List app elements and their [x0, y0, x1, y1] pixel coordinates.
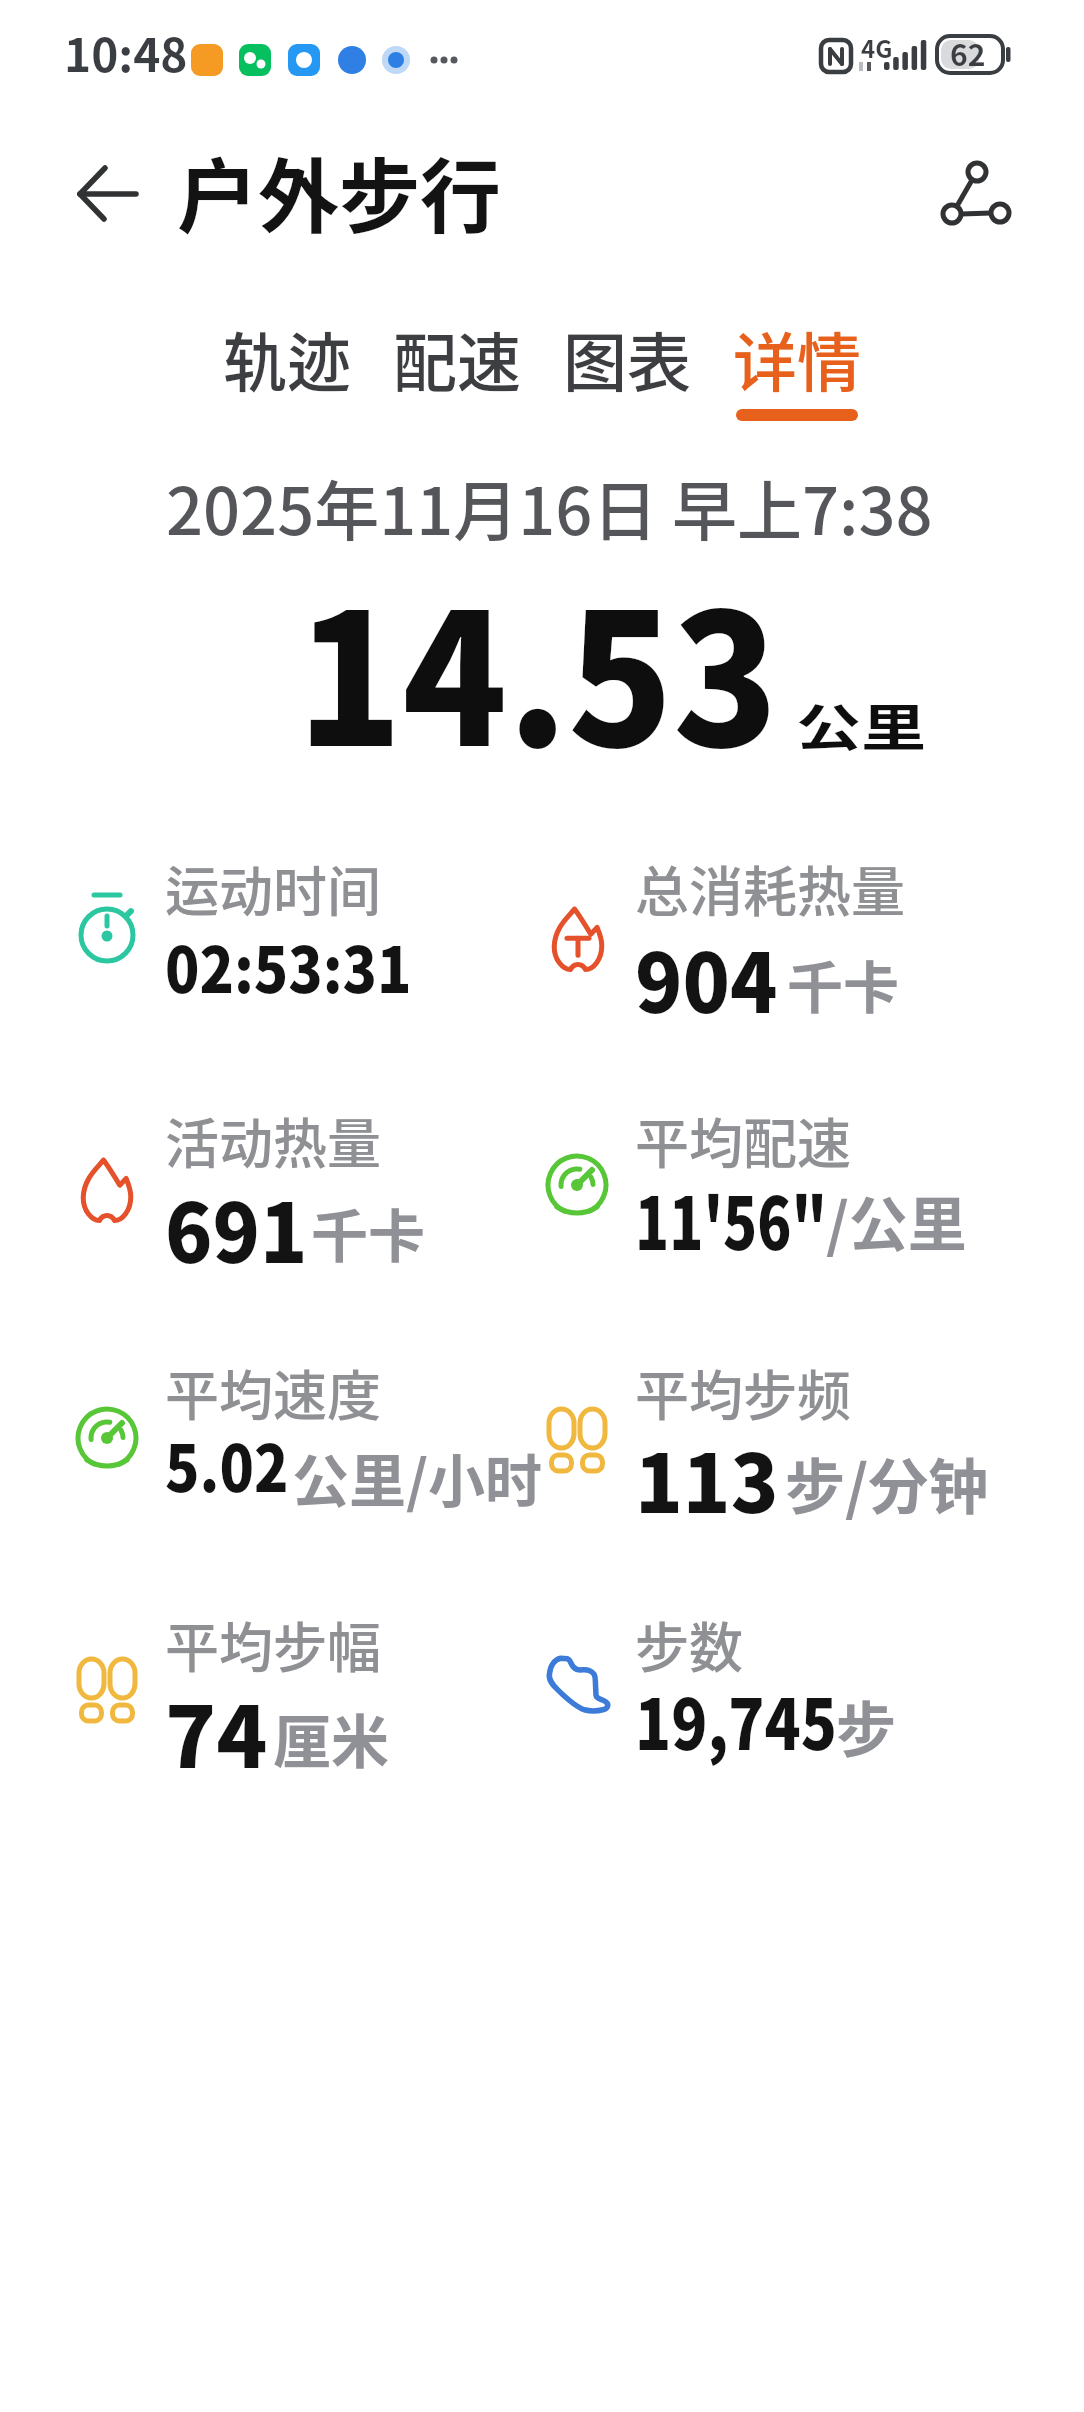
- staticText: 02:53:31: [165, 920, 412, 1011]
- staticText: 平均配速: [635, 1101, 851, 1179]
- button[interactable]: 配速: [393, 312, 521, 405]
- button[interactable]: [933, 153, 1019, 239]
- staticText: 74: [165, 1671, 268, 1793]
- staticText: 5.02: [165, 1418, 289, 1511]
- staticText: 113: [635, 1419, 779, 1536]
- staticText: 千卡: [787, 943, 899, 1024]
- staticText: 2025年11月16日 早上7:38: [166, 460, 933, 554]
- staticText: 千卡: [311, 1191, 425, 1274]
- staticText: 62: [950, 31, 986, 74]
- staticText: 运动时间: [165, 849, 381, 927]
- staticText: 厘米: [273, 1696, 390, 1780]
- staticText: 总消耗热量: [635, 849, 905, 927]
- staticText: 11'56": [635, 1166, 828, 1270]
- staticText: 691: [165, 1168, 308, 1287]
- staticText: 10:48: [64, 19, 188, 86]
- staticText: 平均步幅: [165, 1605, 381, 1683]
- button[interactable]: 详情: [733, 312, 861, 405]
- staticText: 14.53: [297, 535, 779, 799]
- staticText: 19,745: [635, 1669, 837, 1770]
- staticText: 步/分钟: [785, 1439, 989, 1526]
- staticText: /公里: [826, 1178, 967, 1263]
- staticText: 步数: [635, 1605, 743, 1683]
- staticText: 户外步行: [177, 132, 502, 249]
- staticText: 公里/小时: [292, 1436, 543, 1519]
- staticText: 平均速度: [165, 1353, 381, 1431]
- button[interactable]: 图表: [563, 312, 691, 405]
- staticText: 公里: [796, 688, 927, 760]
- staticText: 904: [635, 918, 778, 1037]
- button[interactable]: [60, 158, 136, 234]
- staticText: 4G: [861, 30, 893, 65]
- button[interactable]: 轨迹: [223, 312, 351, 405]
- staticText: 步: [836, 1682, 896, 1769]
- staticText: 平均步频: [635, 1353, 851, 1431]
- staticText: 活动热量: [165, 1101, 381, 1179]
